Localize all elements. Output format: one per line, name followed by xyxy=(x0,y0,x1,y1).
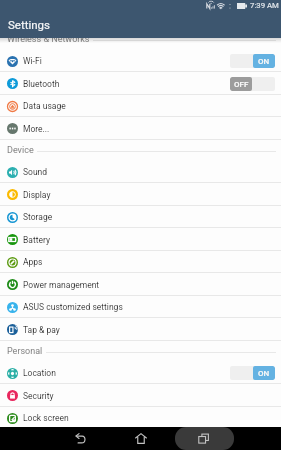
staticText: Location xyxy=(23,368,56,378)
staticText: Settings xyxy=(8,18,50,31)
button[interactable]: More... xyxy=(0,117,281,140)
button[interactable]: OFF xyxy=(230,77,275,91)
button[interactable]: Sound xyxy=(0,161,281,183)
staticText: Sound xyxy=(23,167,48,177)
staticText: Personal xyxy=(7,346,43,357)
staticText: OFF xyxy=(234,80,249,89)
button[interactable]: Power management xyxy=(0,273,281,296)
button[interactable]: ON xyxy=(230,366,275,380)
staticText: Device xyxy=(7,145,34,156)
staticText: Power management xyxy=(23,280,100,290)
button[interactable]: Security xyxy=(0,384,281,407)
button[interactable]: Display xyxy=(0,183,281,206)
button[interactable]: Recent apps icon xyxy=(175,427,234,450)
staticText: Security xyxy=(23,391,54,401)
button[interactable]: Data usage xyxy=(0,95,281,117)
staticText: ON xyxy=(258,369,270,378)
button[interactable]: ON xyxy=(230,54,275,68)
staticText: ASUS customized settings xyxy=(23,302,123,312)
button[interactable]: Recent apps xyxy=(175,427,234,450)
button[interactable]: Lock screen xyxy=(0,407,281,429)
button[interactable]: ASUS customized settings xyxy=(0,296,281,318)
staticText: Battery xyxy=(23,235,50,245)
staticText: Storage xyxy=(23,212,53,222)
staticText: Tap & pay xyxy=(23,325,60,335)
button[interactable]: Bluetooth xyxy=(0,72,281,95)
staticText: Wi-Fi xyxy=(23,56,42,66)
staticText: Bluetooth xyxy=(23,79,60,89)
staticText: More... xyxy=(23,124,50,134)
staticText: Lock screen xyxy=(23,413,69,423)
button[interactable]: Wi-Fi xyxy=(0,50,281,72)
button[interactable]: Tap & pay xyxy=(0,318,281,341)
button[interactable]: Apps xyxy=(0,251,281,273)
staticText: ON xyxy=(258,57,270,66)
button[interactable]: Storage xyxy=(0,206,281,228)
staticText: Wireless & Networks xyxy=(7,34,90,45)
staticText: Display xyxy=(23,190,51,200)
staticText: 7:39 AM xyxy=(250,1,279,10)
staticText: Apps xyxy=(23,257,43,267)
button[interactable]: Back xyxy=(49,427,111,450)
button[interactable]: Battery xyxy=(0,228,281,251)
button[interactable]: Home xyxy=(110,427,171,450)
button[interactable]: Location xyxy=(0,362,281,384)
staticText: Data usage xyxy=(23,101,66,111)
